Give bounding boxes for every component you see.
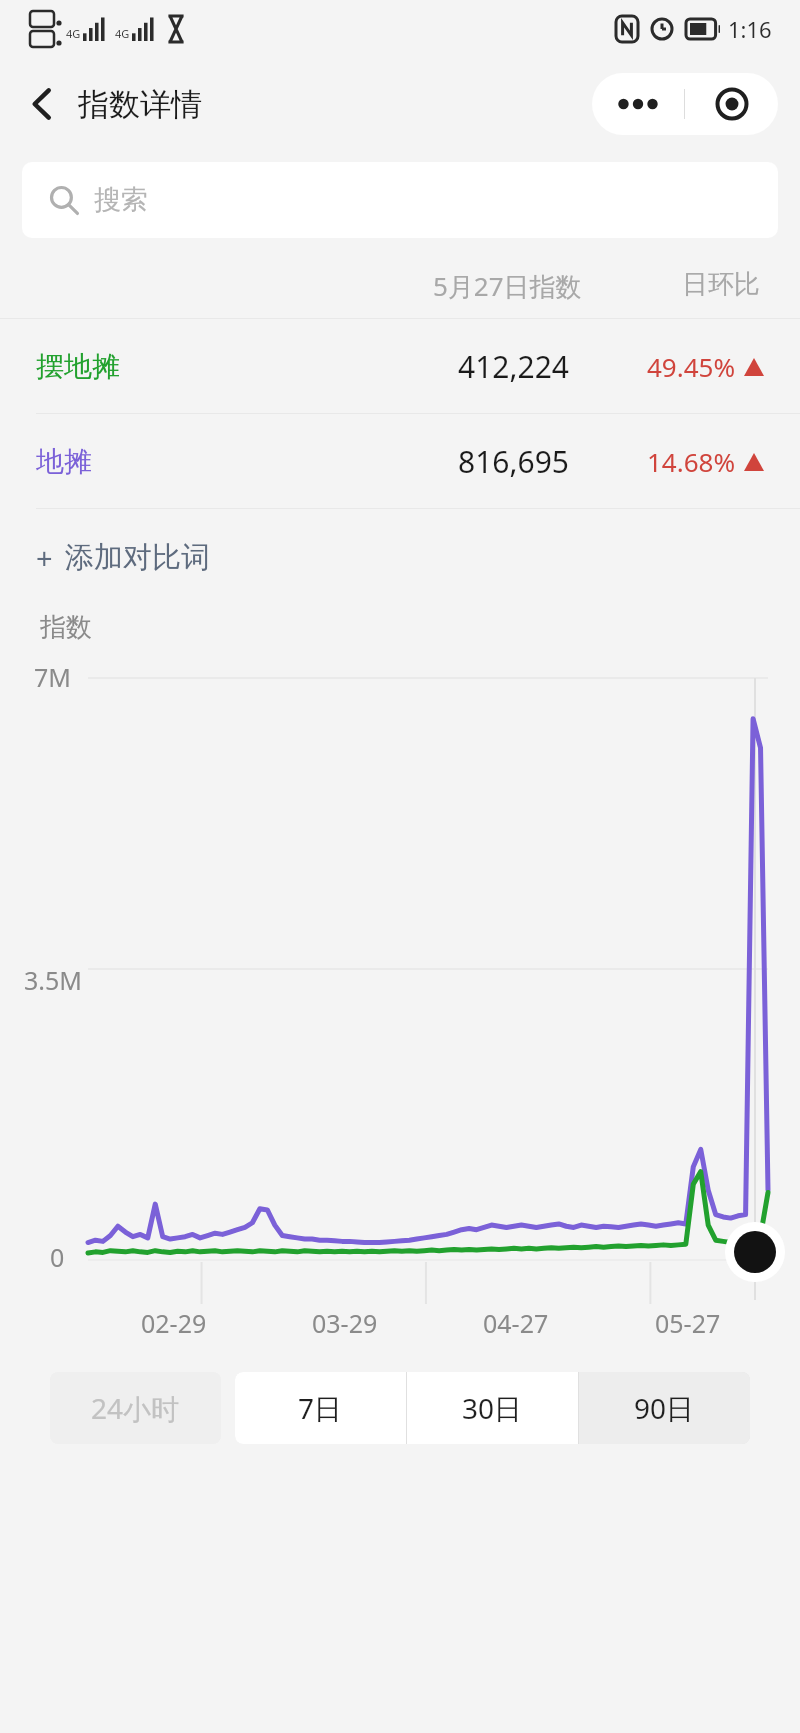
button[interactable]: 摆地摊 [0,319,800,413]
staticText: 搜索 [94,183,148,217]
button[interactable]: + [30,530,216,585]
staticText: + [36,538,53,577]
button[interactable]: 24小时 [50,1372,221,1444]
button[interactable]: 地摊 [0,414,800,508]
button[interactable]: 30日 [407,1372,578,1444]
staticText: 5月27日指数 [433,268,582,304]
staticText: 日环比 [682,268,760,301]
staticText: 24小时 [91,1389,180,1427]
staticText: 指数详情 [78,85,202,124]
staticText: 30日 [462,1389,523,1427]
staticText: 4G [66,26,81,41]
staticText: 摆地摊 [36,349,120,384]
button[interactable]: Close [685,73,778,135]
staticText: 4G [115,26,130,41]
staticText: 0 [50,1240,65,1274]
staticText: 14.68% [647,444,736,479]
staticText: 90日 [634,1389,695,1427]
staticText: 816,695 [458,441,569,482]
staticText: 添加对比词 [65,539,210,576]
staticText: 地摊 [36,444,92,479]
staticText: 指数 [40,611,92,644]
staticText: 7日 [298,1389,343,1427]
staticText: 3.5M [24,963,82,997]
staticText: 1:16 [728,14,772,44]
button[interactable]: Back [20,77,66,131]
staticText: 02-29 [141,1306,207,1340]
staticText: 49.45% [647,349,736,384]
button[interactable]: 7日 [235,1372,406,1444]
staticText: 412,224 [458,346,569,387]
staticText: 03-29 [312,1306,378,1340]
button[interactable]: 搜索 [22,162,778,238]
staticText: 7M [34,660,71,694]
button[interactable]: More options [592,73,684,135]
staticText: 04-27 [483,1306,549,1340]
button[interactable]: 90日 [579,1372,750,1444]
staticText: 05-27 [655,1306,721,1340]
